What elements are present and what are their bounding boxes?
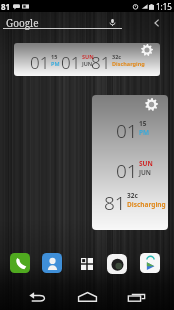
staticText: Google (6, 16, 39, 30)
button[interactable]: Back (24, 288, 50, 306)
staticText: 81 (91, 51, 111, 74)
staticText: SUN (139, 159, 153, 168)
staticText: 32c (112, 53, 122, 60)
staticText: 01 (30, 51, 50, 74)
button[interactable]: 01 (14, 43, 160, 76)
button[interactable]: Google (0, 14, 125, 31)
button[interactable]: Play Store (140, 253, 160, 273)
staticText: PM (51, 60, 60, 67)
other: Voice search (108, 18, 117, 27)
button[interactable]: All apps (80, 257, 93, 270)
button[interactable]: Home (74, 288, 100, 306)
staticText: 01 (61, 51, 81, 74)
staticText: JUN (139, 168, 152, 177)
button[interactable]: Previous page (150, 16, 164, 30)
button[interactable]: Contacts (42, 253, 62, 273)
staticText: 81 (104, 190, 126, 216)
staticText: 1:15 (156, 1, 172, 12)
button[interactable]: Recent apps (123, 288, 149, 306)
staticText: 01 (116, 158, 138, 184)
staticText: Discharging (112, 60, 145, 67)
staticText: 01 (116, 118, 138, 144)
staticText: SUN (82, 53, 94, 60)
staticText: Discharging (127, 200, 166, 209)
button[interactable]: Phone (10, 253, 30, 273)
staticText: PM (139, 128, 150, 137)
staticText: 15 (139, 119, 147, 128)
button[interactable]: 01 (92, 95, 168, 230)
button[interactable]: Camera (107, 254, 127, 274)
staticText: 15 (51, 53, 58, 60)
staticText: 81 (1, 1, 11, 12)
staticText: 32c (127, 191, 138, 200)
staticText: JUN (82, 60, 93, 67)
